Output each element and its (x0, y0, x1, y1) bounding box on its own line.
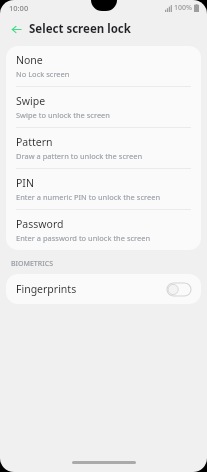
staticText: PIN (16, 176, 34, 190)
staticText: Select screen lock (29, 21, 131, 37)
staticText: Enter a password to unlock the screen (16, 233, 151, 243)
staticText: Fingerprints (16, 282, 167, 296)
button[interactable]: Swipe (6, 87, 201, 127)
button[interactable]: None (6, 46, 201, 86)
staticText: 10:00 (9, 3, 29, 13)
button[interactable]: Back (6, 19, 26, 39)
staticText: Swipe (16, 94, 46, 108)
button[interactable]: Fingerprints toggle (167, 283, 191, 296)
staticText: None (16, 53, 43, 67)
staticText: Draw a pattern to unlock the screen (16, 151, 143, 161)
staticText: Password (16, 217, 64, 231)
button[interactable]: Fingerprints (6, 274, 201, 304)
staticText: No Lock screen (16, 69, 70, 79)
button[interactable]: PIN (6, 169, 201, 209)
staticText: Enter a numeric PIN to unlock the screen (16, 192, 161, 202)
staticText: Swipe to unlock the screen (16, 110, 110, 120)
staticText: Pattern (16, 135, 53, 149)
button[interactable]: Password (6, 210, 201, 250)
staticText: BIOMETRICS (11, 259, 53, 269)
staticText: 100% (174, 3, 192, 13)
button[interactable]: Pattern (6, 128, 201, 168)
